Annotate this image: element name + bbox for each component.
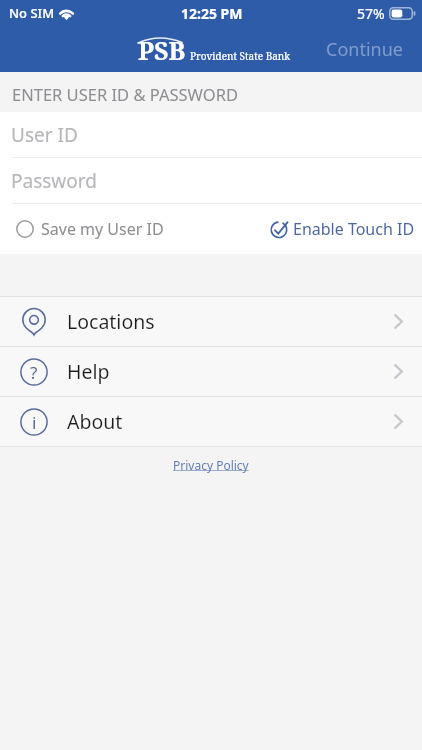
staticText: Password	[11, 168, 97, 194]
staticText: Continue	[326, 37, 403, 62]
button[interactable]: Save my User ID	[0, 218, 164, 240]
staticText: Enable Touch ID	[293, 218, 415, 240]
button[interactable]: Password	[0, 158, 422, 203]
button[interactable]: User ID	[0, 112, 422, 157]
staticText: ENTER USER ID & PASSWORD	[12, 83, 238, 105]
staticText: Locations	[67, 308, 155, 335]
staticText: About	[67, 408, 123, 435]
button[interactable]: i	[0, 397, 422, 446]
staticText: Privacy Policy	[173, 457, 249, 473]
staticText: Provident State Bank	[190, 49, 291, 63]
button[interactable]: Locations	[0, 297, 422, 346]
staticText: ?	[30, 361, 38, 384]
staticText: Save my User ID	[41, 218, 164, 240]
staticText: No SIM	[9, 4, 55, 22]
button[interactable]: Privacy Policy	[167, 451, 255, 479]
staticText: User ID	[11, 122, 78, 148]
button[interactable]: ?	[0, 347, 422, 396]
staticText: Help	[67, 358, 110, 385]
staticText: i	[32, 411, 37, 434]
staticText: PSB	[138, 33, 186, 67]
button[interactable]: Continue	[307, 29, 422, 70]
staticText: 57%	[357, 4, 385, 23]
staticText: 12:25 PM	[181, 4, 243, 23]
button[interactable]: Enable Touch ID	[270, 218, 422, 240]
